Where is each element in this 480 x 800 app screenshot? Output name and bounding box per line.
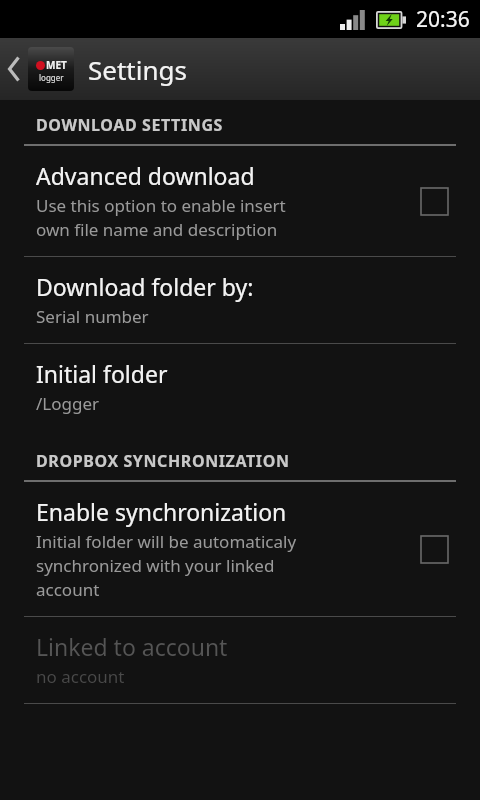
staticText: Initial folder [36,358,168,389]
staticText: Enable synchronization [36,496,287,527]
staticText: /Logger [36,392,100,415]
staticText: logger [39,72,64,83]
staticText: own file name and description [36,218,278,241]
button[interactable]: Enable synchronization [412,527,456,571]
staticText: Advanced download [36,160,255,191]
staticText: Use this option to enable insert [36,194,286,217]
staticText: 20:36 [416,5,470,34]
button[interactable]: Initial folder [0,344,480,430]
button[interactable]: Navigate up [0,39,76,99]
staticText: DROPBOX SYNCHRONIZATION [36,450,290,472]
button[interactable]: Enable synchronization [0,482,480,616]
staticText: account [36,578,100,601]
staticText: Linked to account [36,631,228,662]
staticText: Download folder by: [36,271,254,302]
button[interactable]: Linked to account [0,617,480,703]
staticText: synchronized with your linked [36,554,275,577]
staticText: DOWNLOAD SETTINGS [36,114,223,136]
staticText: Settings [88,52,187,87]
staticText: Serial number [36,305,149,328]
button[interactable]: Download folder by: [0,257,480,343]
button[interactable]: Advanced download [0,146,480,256]
staticText: MET [46,58,67,72]
button[interactable]: Advanced download [412,179,456,223]
staticText: Initial folder will be automaticaly [36,530,297,553]
staticText: no account [36,665,125,688]
